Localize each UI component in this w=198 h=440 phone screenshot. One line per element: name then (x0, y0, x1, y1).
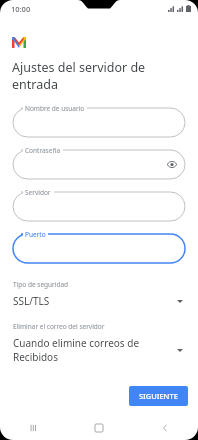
button[interactable]: Puerto (13, 234, 185, 263)
staticText: Eliminar el correo del servidor (13, 322, 105, 331)
staticText: Cuando elimine correos de Recibidos (13, 336, 175, 364)
staticText: Ajustes del servidor de entrada (12, 59, 190, 93)
button[interactable]: Nombre de usuario (13, 108, 185, 137)
staticText: Contraseña (25, 146, 61, 155)
staticText: Tipo de seguridad (13, 280, 69, 289)
staticText: 10:00 (11, 4, 31, 14)
staticText: Nombre de usuario (25, 104, 85, 113)
staticText: Servidor (25, 188, 51, 197)
button[interactable]: Tipo de seguridad (13, 280, 185, 308)
button[interactable]: SIGUIENTE (129, 386, 188, 406)
staticText: SIGUIENTE (139, 391, 178, 401)
button[interactable]: Contraseña (13, 150, 185, 179)
button[interactable]: Back (132, 415, 198, 440)
button[interactable]: Home (66, 415, 132, 440)
button[interactable]: Servidor (13, 192, 185, 221)
staticText: SSL/TLS (13, 294, 175, 308)
staticText: Puerto (25, 230, 46, 239)
button[interactable]: Recents (0, 415, 66, 440)
button[interactable]: Eliminar el correo del servidor (13, 322, 185, 364)
